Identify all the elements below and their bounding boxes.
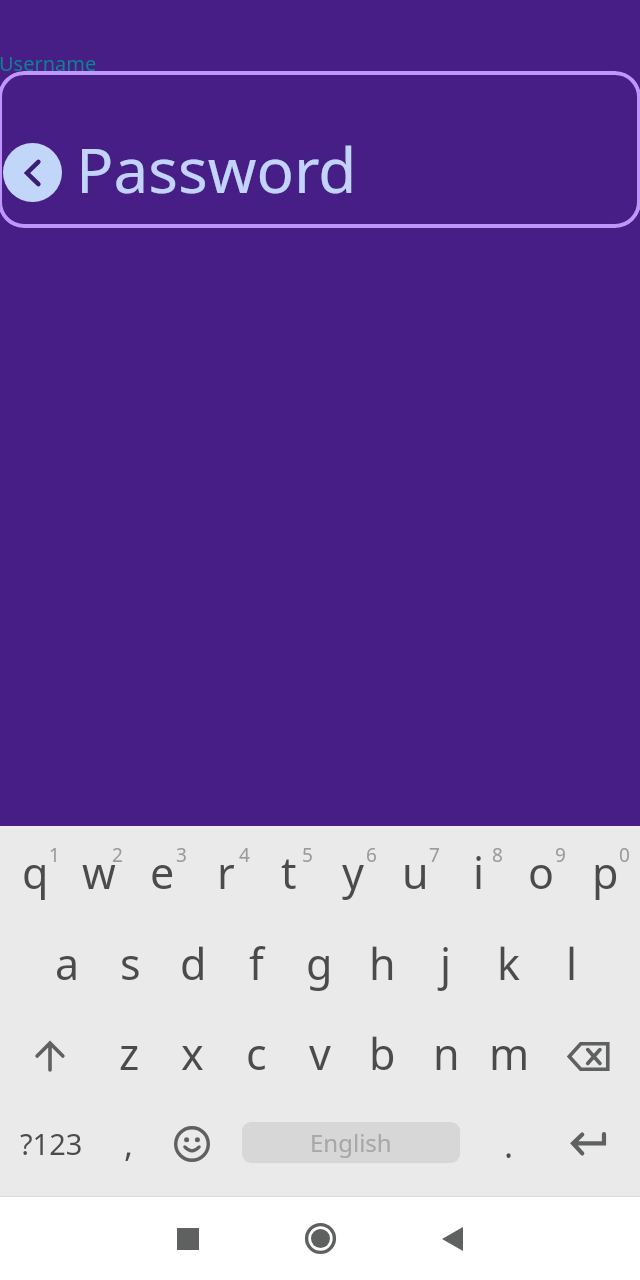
- staticText: 7: [429, 842, 440, 868]
- button[interactable]: c: [225, 1011, 288, 1095]
- button[interactable]: v: [288, 1011, 351, 1095]
- button[interactable]: w: [67, 827, 130, 917]
- button[interactable]: .: [477, 1102, 541, 1186]
- staticText: s: [120, 934, 141, 993]
- button[interactable]: Backspace: [539, 1014, 638, 1098]
- staticText: 9: [555, 842, 566, 868]
- staticText: 0: [619, 842, 630, 868]
- staticText: e: [150, 843, 175, 902]
- button[interactable]: ?123: [1, 1102, 101, 1186]
- button[interactable]: u: [384, 827, 447, 917]
- staticText: a: [55, 934, 80, 993]
- staticText: j: [440, 934, 452, 993]
- staticText: 8: [492, 842, 503, 868]
- button[interactable]: Recents: [122, 1197, 254, 1280]
- staticText: 6: [366, 842, 377, 868]
- button[interactable]: n: [415, 1011, 478, 1095]
- button[interactable]: English: [242, 1122, 460, 1163]
- staticText: l: [566, 934, 578, 993]
- staticText: 3: [176, 842, 187, 868]
- button[interactable]: k: [477, 921, 540, 1005]
- staticText: t: [281, 843, 297, 902]
- staticText: k: [497, 934, 520, 993]
- staticText: w: [82, 843, 116, 902]
- button[interactable]: j: [414, 921, 477, 1005]
- button[interactable]: Emoji: [161, 1102, 223, 1186]
- button[interactable]: f: [225, 921, 288, 1005]
- staticText: Password: [76, 127, 357, 211]
- staticText: y: [342, 843, 364, 902]
- staticText: 2: [112, 842, 123, 868]
- button[interactable]: Shift: [0, 1014, 99, 1098]
- staticText: m: [489, 1024, 530, 1083]
- button[interactable]: a: [36, 921, 99, 1005]
- staticText: z: [119, 1024, 140, 1083]
- button[interactable]: Back: [386, 1197, 518, 1280]
- button[interactable]: r: [194, 827, 257, 917]
- button[interactable]: s: [99, 921, 162, 1005]
- staticText: d: [180, 934, 207, 993]
- button[interactable]: Enter: [543, 1102, 633, 1186]
- staticText: 1: [49, 842, 60, 868]
- staticText: g: [306, 934, 333, 993]
- button[interactable]: o: [510, 827, 573, 917]
- button[interactable]: g: [288, 921, 351, 1005]
- staticText: English: [310, 1126, 392, 1159]
- button[interactable]: Home: [254, 1197, 386, 1280]
- staticText: r: [217, 843, 235, 902]
- button[interactable]: p: [574, 827, 637, 917]
- staticText: o: [528, 843, 555, 902]
- staticText: p: [592, 843, 619, 902]
- button[interactable]: ,: [97, 1102, 161, 1186]
- button[interactable]: z: [98, 1011, 161, 1095]
- staticText: 5: [302, 842, 313, 868]
- staticText: 4: [239, 842, 250, 868]
- button[interactable]: Back: [3, 143, 62, 202]
- button[interactable]: d: [162, 921, 225, 1005]
- button[interactable]: l: [540, 921, 603, 1005]
- staticText: u: [402, 843, 429, 902]
- staticText: c: [246, 1024, 267, 1083]
- button[interactable]: m: [478, 1011, 541, 1095]
- button[interactable]: t: [257, 827, 320, 917]
- button[interactable]: x: [161, 1011, 224, 1095]
- staticText: Username: [0, 50, 97, 77]
- staticText: ,: [124, 1121, 134, 1167]
- button[interactable]: h: [351, 921, 414, 1005]
- button[interactable]: i: [447, 827, 510, 917]
- staticText: q: [22, 843, 49, 902]
- button[interactable]: y: [321, 827, 384, 917]
- button[interactable]: Back: [0, 71, 640, 228]
- button[interactable]: b: [351, 1011, 414, 1095]
- staticText: v: [309, 1024, 331, 1083]
- staticText: i: [473, 843, 485, 902]
- staticText: b: [369, 1024, 396, 1083]
- button[interactable]: e: [131, 827, 194, 917]
- staticText: h: [369, 934, 396, 993]
- staticText: ?123: [20, 1124, 83, 1163]
- staticText: x: [181, 1024, 204, 1083]
- staticText: .: [504, 1122, 514, 1168]
- staticText: f: [249, 934, 264, 993]
- button[interactable]: q: [4, 827, 67, 917]
- staticText: n: [433, 1024, 460, 1083]
